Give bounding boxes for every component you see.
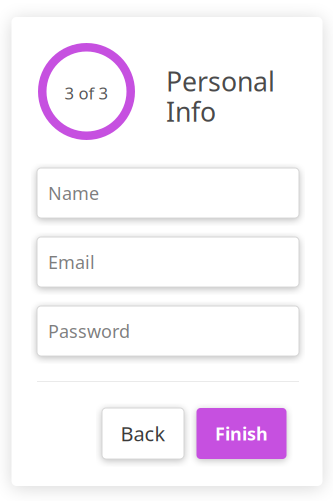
- staticText: Name: [48, 181, 99, 205]
- staticText: Back: [120, 420, 165, 447]
- staticText: 3 of 3: [64, 82, 108, 104]
- button[interactable]: Finish: [196, 408, 286, 459]
- staticText: Email: [48, 250, 95, 274]
- staticText: Personal: [166, 63, 275, 99]
- staticText: Password: [48, 319, 130, 343]
- staticText: Finish: [215, 421, 268, 446]
- staticText: Info: [166, 93, 216, 130]
- button[interactable]: Back: [102, 408, 184, 459]
